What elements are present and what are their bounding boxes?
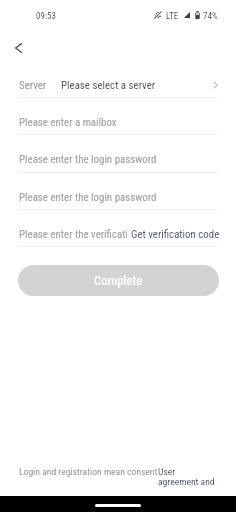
button[interactable]: Back	[3, 33, 33, 63]
button[interactable]: Please enter the login password	[18, 172, 219, 209]
button[interactable]: Please enter the verification code	[19, 228, 127, 241]
staticText: 09:53	[36, 11, 56, 22]
staticText: Complete	[94, 273, 143, 288]
staticText: Please enter the verification code	[19, 228, 127, 241]
button[interactable]: Complete	[18, 265, 219, 296]
staticText: 74%	[203, 11, 218, 22]
staticText: Login and registration mean consent	[19, 466, 158, 477]
staticText: Please enter the login password	[19, 153, 157, 166]
button[interactable]: Please enter the login password	[18, 134, 219, 171]
button[interactable]: Please enter a mailbox	[18, 97, 219, 134]
staticText: Please enter the login password	[19, 191, 157, 204]
staticText: Get verification code	[131, 228, 220, 241]
staticText: Please enter a mailbox	[19, 116, 117, 129]
button[interactable]: Get verification code	[131, 228, 220, 241]
button[interactable]: User agreement and	[158, 466, 216, 488]
staticText: LTE	[166, 11, 179, 22]
staticText: Please select a server	[61, 79, 156, 92]
staticText: User agreement and	[158, 466, 216, 488]
button[interactable]: Server	[18, 60, 219, 97]
staticText: Server	[19, 79, 47, 92]
